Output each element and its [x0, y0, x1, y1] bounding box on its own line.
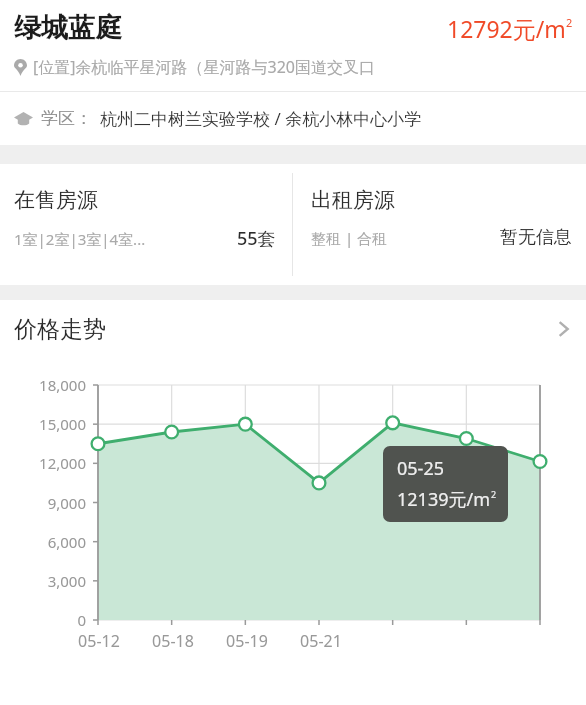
staticText: 3,000 [0, 571, 86, 591]
staticText: 整租 | 合租 [311, 228, 388, 248]
staticText: 15,000 [0, 414, 86, 434]
staticText: 05-19 [210, 630, 284, 652]
staticText: 学区： [41, 108, 92, 129]
staticText: 1室|2室|3室|4室... [14, 229, 146, 249]
button[interactable]: 出租房源 [293, 164, 586, 285]
staticText: 价格走势 [14, 315, 106, 344]
staticText: 2 [491, 488, 497, 500]
staticText: [位置]余杭临平星河路（星河路与320国道交叉口 [33, 56, 375, 78]
staticText: 暂无信息 [500, 226, 572, 249]
staticText: 在售房源 [14, 187, 98, 213]
staticText: 0 [0, 610, 86, 630]
staticText: 杭州二中树兰实验学校 / 余杭小林中心小学 [100, 107, 422, 130]
other: More price trend [558, 319, 569, 339]
staticText: 05-25 [397, 456, 444, 481]
button[interactable]: 在售房源 [0, 164, 292, 285]
staticText: 18,000 [0, 375, 86, 395]
other: School district [14, 112, 33, 126]
staticText: 05-18 [136, 630, 210, 652]
button[interactable]: 价格走势 [0, 300, 586, 358]
staticText: 12,000 [0, 453, 86, 473]
staticText: 12792元/m [447, 13, 566, 44]
staticText: 出租房源 [311, 187, 395, 213]
button[interactable]: Location [0, 56, 586, 78]
staticText: 9,000 [0, 493, 86, 513]
staticText: 6,000 [0, 532, 86, 552]
button[interactable]: School district [0, 92, 586, 145]
staticText: 55套 [237, 226, 276, 251]
other: Location [14, 59, 27, 76]
staticText: 05-12 [62, 630, 136, 652]
staticText: 绿城蓝庭 [14, 11, 122, 45]
staticText: 05-21 [284, 630, 358, 652]
staticText: 12139元/m [397, 487, 491, 512]
staticText: 2 [566, 15, 573, 30]
